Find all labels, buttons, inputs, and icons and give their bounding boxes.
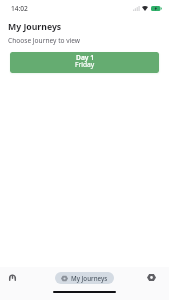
staticText: 14:02	[11, 4, 28, 13]
button[interactable]: My Journeys	[55, 272, 114, 284]
button[interactable]: Day 1	[10, 52, 159, 73]
staticText: Friday	[75, 60, 95, 69]
staticText: Choose Journey to view	[8, 36, 81, 45]
staticText: My Journeys	[71, 274, 108, 282]
button[interactable]: Home	[4, 271, 20, 284]
staticText: Day 1	[76, 53, 95, 62]
button[interactable]: Settings	[143, 271, 159, 284]
staticText: My Journeys	[8, 21, 62, 33]
